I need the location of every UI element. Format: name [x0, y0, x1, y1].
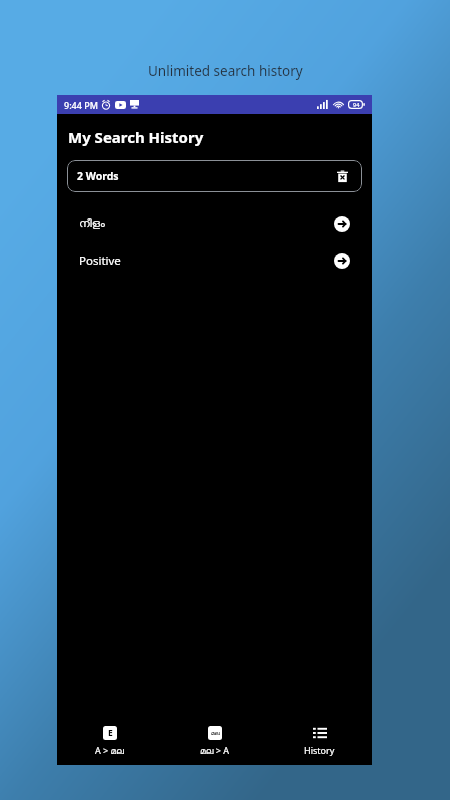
other: Open Positive	[333, 252, 350, 269]
staticText: Unlimited search history	[148, 62, 303, 80]
button[interactable]: Delete search history	[332, 166, 352, 186]
staticText: E	[108, 727, 113, 739]
staticText: My Search History	[68, 127, 204, 147]
staticText: 9:44 PM	[64, 99, 98, 111]
button[interactable]: 2 Words	[67, 160, 362, 192]
staticText: Positive	[79, 253, 121, 269]
button[interactable]: History	[267, 717, 372, 765]
staticText: 94	[353, 101, 360, 108]
staticText: A > മല	[95, 744, 124, 756]
staticText: മല	[211, 730, 220, 736]
staticText: 2 Words	[77, 169, 119, 183]
staticText: മല > A	[200, 744, 229, 756]
other: Open നീളം	[333, 215, 350, 232]
staticText: History	[304, 744, 335, 756]
button[interactable]: English to Malayalam	[57, 717, 162, 765]
staticText: നീളം	[79, 218, 105, 229]
button[interactable]: Malayalam to English	[162, 717, 267, 765]
button[interactable]: Positive	[57, 242, 372, 279]
button[interactable]: നീളം	[57, 205, 372, 242]
